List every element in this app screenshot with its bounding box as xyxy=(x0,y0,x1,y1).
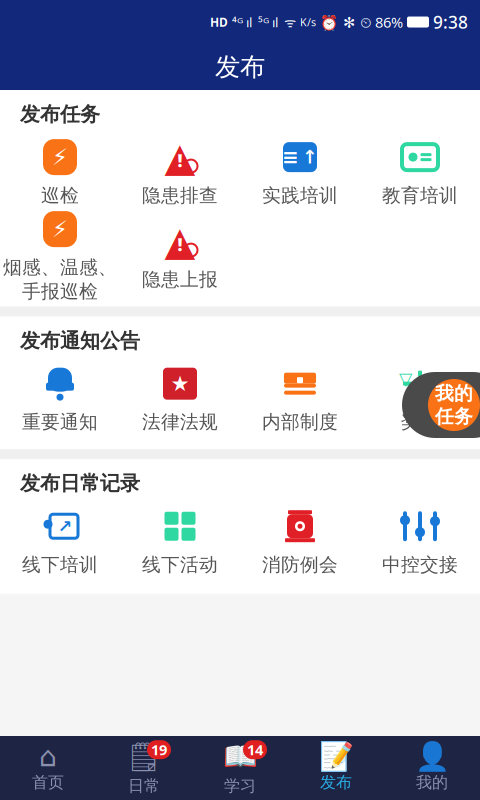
button[interactable]: ▲ xyxy=(120,215,240,299)
staticText: 我的 xyxy=(416,773,448,792)
staticText: 隐患排查 xyxy=(142,184,218,207)
staticText: ▲ xyxy=(164,134,195,180)
staticText: ↑ xyxy=(302,146,318,168)
button[interactable]: 🗒 xyxy=(96,739,192,797)
staticText: 发布通知公告 xyxy=(20,329,140,353)
staticText: ▲ xyxy=(164,218,195,264)
button[interactable]: 线下活动 xyxy=(120,500,240,584)
staticText: 消防例会 xyxy=(262,553,338,576)
staticText: 9:38 xyxy=(433,10,468,33)
staticText: ! xyxy=(177,233,182,256)
staticText: ▽ xyxy=(399,369,412,388)
button[interactable]: 教育培训 xyxy=(360,131,480,215)
staticText: ! xyxy=(177,149,182,172)
button[interactable]: ⌂ xyxy=(0,739,96,797)
staticText: 📝 xyxy=(318,741,353,773)
staticText: 学习 xyxy=(224,776,256,796)
button[interactable]: 消防例会 xyxy=(240,500,360,584)
staticText: 📖 xyxy=(222,741,257,773)
staticText: 👤 xyxy=(414,741,449,773)
staticText: 隐患上报 xyxy=(142,268,218,291)
button[interactable]: 👤 xyxy=(384,739,480,797)
staticText: ▽ xyxy=(428,369,441,388)
staticText: ↗ xyxy=(57,516,72,536)
staticText: 内部制度 xyxy=(262,411,338,434)
staticText: 14 xyxy=(247,740,263,759)
staticText: 19 xyxy=(151,740,167,759)
button[interactable]: 我的 xyxy=(402,372,480,438)
staticText: ⚡︎ xyxy=(52,144,68,170)
staticText: 中控交接 xyxy=(382,553,458,576)
button[interactable]: 📝 xyxy=(288,739,384,797)
staticText: ⁴ᴳ ıl ⁵ᴳ ıl ᯤ xyxy=(232,13,296,31)
staticText: 重要通知 xyxy=(22,411,98,434)
staticText: 教育培训 xyxy=(382,184,458,207)
button[interactable]: 内部制度 xyxy=(240,357,360,441)
staticText: 烟感、温感、 xyxy=(3,256,117,279)
staticText: 巡检 xyxy=(41,184,79,207)
staticText: 发布日常记录 xyxy=(20,471,140,496)
button[interactable]: ↗ xyxy=(0,500,120,584)
staticText: K/s xyxy=(300,15,316,29)
button[interactable]: 重要通知 xyxy=(0,357,120,441)
staticText: 日常 xyxy=(128,776,160,796)
staticText: HD xyxy=(210,14,228,30)
button[interactable]: ⚡︎ xyxy=(0,215,120,299)
staticText: 任务 xyxy=(435,405,473,428)
staticText: 发布 xyxy=(320,773,352,792)
staticText: 法律法规 xyxy=(142,411,218,434)
button[interactable]: ▲ xyxy=(120,131,240,215)
button[interactable]: ⚡︎ xyxy=(0,131,120,215)
staticText: 首页 xyxy=(32,773,64,792)
staticText: ⚡︎ xyxy=(52,216,68,242)
button[interactable]: ≡ xyxy=(240,131,360,215)
button[interactable]: ▽ xyxy=(360,357,480,441)
staticText: ≡ xyxy=(282,146,299,168)
staticText: 线下活动 xyxy=(142,553,218,576)
staticText: 🗒 xyxy=(126,741,162,773)
staticText: 我的 xyxy=(435,382,473,405)
staticText: ⌂ xyxy=(39,741,57,773)
button[interactable]: ★ xyxy=(120,357,240,441)
staticText: ⏰ ✻ ⏲ 86% xyxy=(320,12,403,32)
button[interactable]: 中控交接 xyxy=(360,500,480,584)
staticText: 发布任务 xyxy=(20,102,100,127)
staticText: 实践培训 xyxy=(262,184,338,207)
staticText: 奖惩 xyxy=(401,411,439,434)
staticText: 线下培训 xyxy=(22,553,98,576)
staticText: ★ xyxy=(170,372,189,396)
staticText: 手报巡检 xyxy=(22,280,98,303)
button[interactable]: 📖 xyxy=(192,739,288,797)
staticText: 发布 xyxy=(215,51,265,82)
